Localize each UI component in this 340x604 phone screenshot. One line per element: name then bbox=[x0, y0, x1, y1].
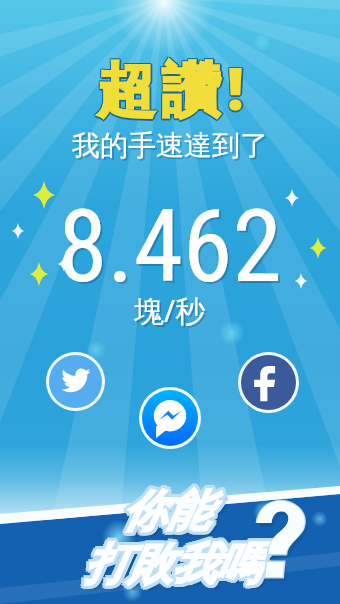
staticText: 你能 bbox=[122, 487, 210, 542]
staticText: 超讚! bbox=[97, 47, 251, 126]
staticText: 超讚! bbox=[98, 47, 252, 126]
staticText: 你能 bbox=[119, 483, 207, 538]
staticText: 你能 bbox=[125, 483, 213, 538]
staticText: 打敗我嗎 bbox=[89, 542, 265, 597]
button[interactable]: Share on Messenger bbox=[142, 390, 198, 446]
staticText: 打敗我嗎 bbox=[84, 540, 260, 595]
staticText: 打敗我嗎 bbox=[81, 536, 257, 591]
staticText: 打敗我嗎 bbox=[86, 539, 262, 594]
staticText: 超讚! bbox=[98, 49, 252, 128]
staticText: 打敗我嗎 bbox=[87, 537, 263, 592]
staticText: 打敗我嗎 bbox=[87, 536, 263, 591]
staticText: 你能 bbox=[127, 489, 215, 544]
staticText: 8.462 bbox=[60, 190, 284, 307]
staticText: 8.462 bbox=[58, 188, 282, 305]
staticText: 你能 bbox=[125, 484, 213, 539]
staticText: 超讚! bbox=[99, 48, 253, 127]
staticText: 打敗我嗎 bbox=[84, 537, 260, 592]
staticText: 你能 bbox=[121, 487, 209, 542]
staticText: 超讚! bbox=[96, 47, 250, 126]
staticText: 你能 bbox=[119, 484, 207, 539]
button[interactable]: Share on Twitter bbox=[49, 355, 102, 408]
staticText: 塊/秒 bbox=[136, 292, 208, 333]
staticText: 你能 bbox=[119, 486, 207, 541]
staticText: 打敗我嗎 bbox=[83, 534, 259, 589]
staticText: 打敗我嗎 bbox=[86, 534, 262, 589]
staticText: 打敗我嗎 bbox=[88, 541, 264, 596]
staticText: 打敗我嗎 bbox=[81, 539, 257, 594]
staticText: 你能 bbox=[125, 486, 213, 541]
staticText: 你能 bbox=[124, 486, 212, 541]
staticText: 你能 bbox=[122, 481, 210, 536]
staticText: 我的手速達到了 bbox=[72, 128, 268, 163]
staticText: 打敗我嗎 bbox=[85, 538, 261, 593]
staticText: 超讚! bbox=[97, 50, 251, 129]
button[interactable]: Challenge me bbox=[250, 501, 304, 579]
staticText: 超讚! bbox=[97, 48, 251, 127]
button[interactable]: Share on Facebook bbox=[241, 355, 296, 410]
staticText: 你能 bbox=[122, 484, 210, 539]
staticText: 超讚! bbox=[96, 48, 250, 127]
staticText: 塊/秒 bbox=[134, 290, 206, 331]
staticText: 打敗我嗎 bbox=[87, 539, 263, 594]
staticText: 你能 bbox=[126, 488, 214, 543]
staticText: 打敗我嗎 bbox=[84, 534, 260, 589]
staticText: 你能 bbox=[121, 481, 209, 536]
staticText: 打敗我嗎 bbox=[86, 540, 262, 595]
staticText: 你能 bbox=[123, 485, 211, 540]
staticText: 我的手速達到了 bbox=[74, 130, 270, 165]
staticText: 打敗我嗎 bbox=[83, 540, 259, 595]
staticText: 你能 bbox=[124, 481, 212, 536]
staticText: 打敗我嗎 bbox=[81, 537, 257, 592]
staticText: 超讚! bbox=[96, 49, 250, 128]
staticText: 你能 bbox=[124, 487, 212, 542]
